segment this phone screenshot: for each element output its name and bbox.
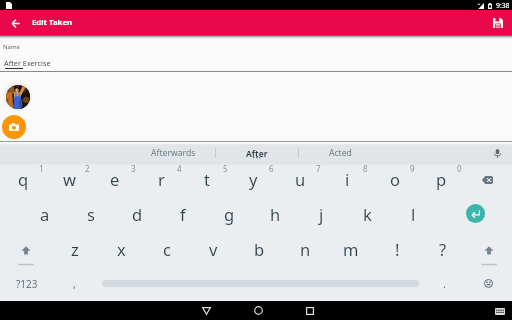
button[interactable]: k [344,196,390,231]
staticText: x [117,238,126,260]
button[interactable]: Voice input [491,147,503,159]
button[interactable]: ? [420,231,466,266]
button[interactable]: g [206,196,252,231]
staticText: Afterwards [151,147,196,159]
button[interactable]: Back [180,301,232,320]
button[interactable]: Space [96,266,424,301]
button[interactable]: h [252,196,298,231]
button[interactable]: , [53,266,96,301]
staticText: . [443,277,446,291]
staticText: 6 [269,163,274,174]
staticText: u [295,168,306,190]
staticText: 0 [457,163,462,174]
button[interactable]: Recents [284,301,336,320]
button[interactable]: j [298,196,344,231]
staticText: Edit Taken [32,17,73,28]
button[interactable]: d [114,196,160,231]
button[interactable]: Enter [439,196,512,231]
staticText: c [163,238,171,260]
staticText: r [158,168,165,190]
staticText: g [224,203,235,225]
staticText: 4 [177,163,182,174]
button[interactable]: a [22,196,68,231]
button[interactable]: i [324,161,371,196]
staticText: Name [3,43,20,51]
staticText: i [345,168,350,190]
staticText: z [71,238,79,260]
button[interactable]: y [230,161,277,196]
staticText: 2 [85,163,90,174]
staticText: a [40,203,50,225]
button[interactable]: n [282,231,328,266]
staticText: o [390,168,400,190]
button[interactable]: ?123 [0,266,53,301]
button[interactable]: v [190,231,236,266]
button[interactable]: s [68,196,114,231]
staticText: 9 [410,163,415,174]
button[interactable]: x [98,231,144,266]
staticText: d [132,203,143,225]
button[interactable]: r [138,161,184,196]
button[interactable]: w [46,161,92,196]
staticText: 5 [223,163,228,174]
button[interactable]: p [418,161,465,196]
button[interactable]: z [52,231,98,266]
staticText: 7 [316,163,321,174]
staticText: h [270,203,281,225]
button[interactable]: Shift [0,231,52,266]
staticText: w [63,168,76,190]
button[interactable]: After [216,145,298,161]
button[interactable]: Afterwards [131,145,215,161]
button[interactable]: Shift [466,231,512,266]
staticText: t [204,168,210,190]
staticText: s [87,203,95,225]
staticText: m [343,238,359,260]
button[interactable]: Home [232,301,284,320]
staticText: 3 [131,163,136,174]
staticText: y [249,168,258,190]
staticText: Acted [329,147,352,159]
button[interactable]: Back [4,12,26,34]
button[interactable]: Emoji [464,266,512,301]
button[interactable]: q [0,161,46,196]
staticText: l [411,203,416,225]
staticText: 9:38 [496,1,510,10]
button[interactable]: b [236,231,282,266]
button[interactable]: . [424,266,464,301]
staticText: ?123 [16,277,38,291]
staticText: ? [439,238,447,260]
staticText: 1 [39,163,44,174]
button[interactable]: Save [489,14,507,32]
staticText: k [363,203,372,225]
staticText: v [209,238,218,260]
button[interactable]: Switch keyboard [493,304,507,318]
staticText: j [319,203,324,225]
staticText: b [254,238,265,260]
button[interactable]: o [371,161,418,196]
staticText: ! [395,238,400,260]
button[interactable]: Photo [3,82,32,111]
staticText: q [18,168,29,190]
staticText: , [73,277,76,291]
staticText: n [300,238,311,260]
button[interactable]: u [277,161,324,196]
button[interactable]: Take photo [2,115,26,139]
button[interactable]: ! [374,231,420,266]
staticText: e [110,168,120,190]
button[interactable]: f [160,196,206,231]
button[interactable]: Backspace [465,161,512,196]
staticText: p [436,168,447,190]
button[interactable]: Acted [299,145,381,161]
staticText: After Exercise [4,58,51,68]
button[interactable]: t [184,161,230,196]
button[interactable]: m [328,231,374,266]
button[interactable]: e [92,161,138,196]
button[interactable]: c [144,231,190,266]
staticText: 8 [363,163,368,174]
staticText: f [180,203,186,225]
staticText: After [246,148,268,159]
button[interactable]: l [390,196,436,231]
